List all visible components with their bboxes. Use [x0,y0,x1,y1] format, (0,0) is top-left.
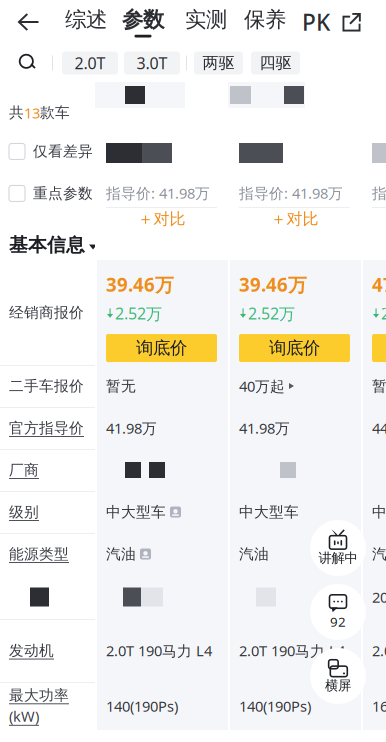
staticText: 指导价: 44.98万 [372,183,386,203]
button[interactable]: 讲解中 [310,520,366,576]
staticText: 综述 [65,6,107,33]
button[interactable]: 参数 [118,2,168,42]
staticText: 二手车报价 [9,377,84,395]
staticText: 中大型车 [239,503,299,521]
button[interactable]: 评论 [310,584,366,640]
staticText: 2.0T 190马力 L4 [372,641,386,660]
button[interactable]: 分享 [341,2,363,42]
staticText: 13 [24,103,40,122]
staticText: 询底价 [269,337,320,359]
staticText: 重点参数 [33,184,93,202]
staticText: 41.98万 [239,418,290,438]
staticText: 指导价: 41.98万 [106,183,210,203]
staticText: 保养 [244,6,286,33]
staticText: 共 [9,104,24,122]
staticText: ＋对比 [270,209,318,229]
staticText: 询底价 [136,337,187,359]
staticText: 140(190Ps) [106,696,178,716]
button[interactable]: 横屏 [310,648,366,704]
button[interactable]: 仅看差异 [0,138,95,164]
button[interactable]: 四驱 [251,51,300,74]
staticText: 39.46万 [106,272,174,297]
staticText: 暂无 [106,377,136,395]
staticText: 最大功率 [9,686,69,704]
staticText: 2.52万 [248,303,295,324]
staticText: 讲解中 [318,550,357,566]
staticText: 20 [372,587,386,607]
staticText: 横屏 [325,677,351,694]
staticText: 实测 [185,6,227,33]
staticText: (kW) [9,706,39,726]
button[interactable]: ＋对比 [228,208,361,230]
staticText: 40万起 [239,376,285,396]
staticText: 能源类型 [9,545,69,563]
staticText: 指导价: 41.98万 [239,183,343,203]
staticText: 参数 [122,6,164,33]
button[interactable]: 综述 [61,2,111,42]
staticText: PK [302,7,330,37]
button[interactable]: ＋对比 [95,208,228,230]
button[interactable]: 3.0T [124,51,180,74]
staticText: 160(218Ps) [372,696,386,716]
button[interactable]: 返回 [8,2,48,42]
staticText: 2.52万 [115,303,162,324]
staticText: 中大型车 [372,503,386,521]
staticText: 2.0T 190马力 L4 [106,641,212,660]
staticText: 厂商 [9,461,39,479]
staticText: 2.52万 [381,303,386,324]
staticText: 44.98万 [372,418,386,438]
staticText: 汽油 [239,545,269,563]
staticText: 款车 [40,104,70,122]
button[interactable]: 询底价 [106,334,217,362]
button[interactable]: 重点参数 [0,180,95,206]
staticText: 基本信息 [9,233,85,256]
staticText: 级别 [9,503,39,521]
staticText: 四驱 [259,53,291,73]
staticText: 仅看差异 [33,142,93,160]
staticText: ＋对比 [137,209,185,229]
staticText: 两驱 [202,53,234,73]
button[interactable]: 询底价 [239,334,350,362]
staticText: 39.46万 [239,272,307,297]
staticText: 官方指导价 [9,419,84,437]
staticText: 140(190Ps) [239,696,311,716]
staticText: 2.0T [74,52,105,74]
button[interactable]: 保养 [240,2,290,42]
staticText: 暂无 [372,377,386,395]
staticText: 2.0T 190马力 L4 [239,641,345,660]
staticText: 3.0T [136,52,167,74]
button[interactable]: 搜索 [19,47,37,79]
button[interactable]: 2.0T [62,51,118,74]
staticText: 汽油 [106,545,136,563]
staticText: 发动机 [9,641,54,659]
staticText: 41.98万 [106,418,157,438]
button[interactable]: 实测 [181,2,231,42]
staticText: 47.46万 [372,272,386,297]
button[interactable]: 询底价 [372,334,386,362]
button[interactable]: 两驱 [194,51,243,74]
staticText: 中大型车 [106,503,166,521]
button[interactable]: PK [302,2,330,42]
staticText: 汽油 [372,545,386,563]
staticText: 经销商报价 [9,303,84,321]
staticText: 92 [330,613,346,630]
